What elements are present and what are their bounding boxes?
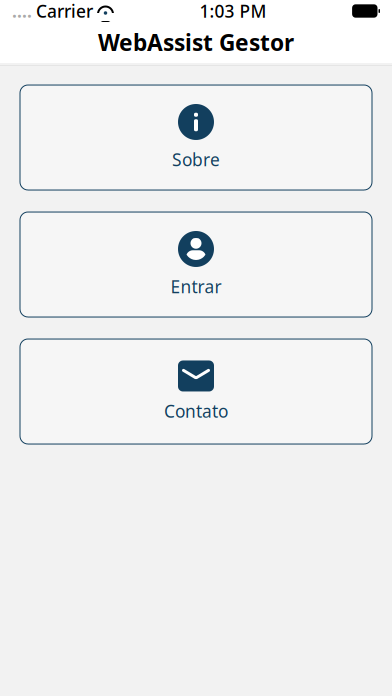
staticText: WebAssist Gestor [98,27,294,57]
staticText: Sobre [172,148,220,171]
staticText: 1:03 PM [200,0,267,22]
staticText: .... [12,0,32,22]
button[interactable]: Entrar [20,212,372,317]
staticText: Contato [164,399,228,422]
staticText: Carrier [36,0,93,22]
button[interactable]: Sobre [20,85,372,190]
staticText: Entrar [170,275,221,298]
button[interactable]: Contato [20,339,372,444]
